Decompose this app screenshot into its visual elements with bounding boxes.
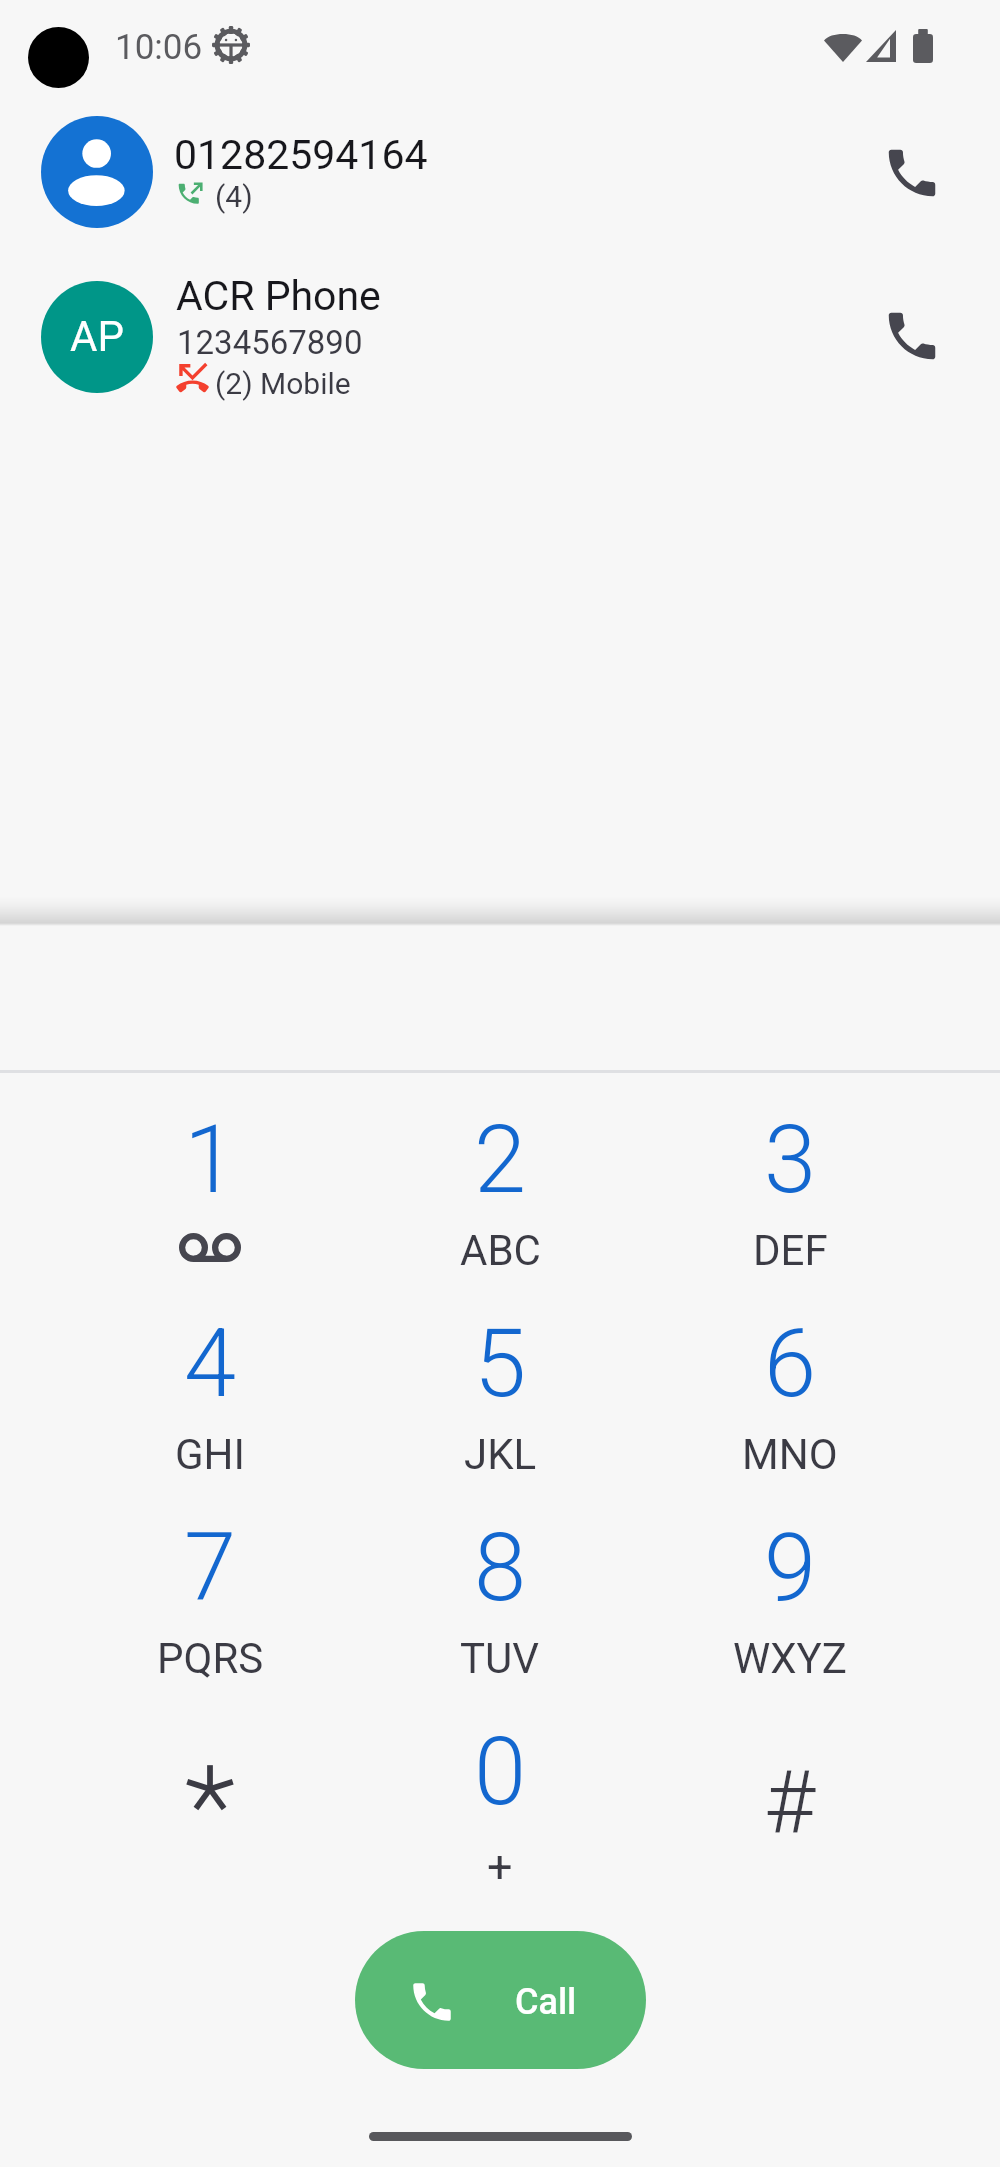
staticText: 5 xyxy=(474,1309,527,1419)
staticText: ACR Phone xyxy=(176,272,381,320)
staticText: MNO xyxy=(742,1430,838,1479)
staticText: PQRS xyxy=(157,1634,264,1683)
staticText: 8 xyxy=(474,1513,527,1623)
staticText: WXYZ xyxy=(733,1634,847,1683)
button[interactable]: Call ACR Phone xyxy=(866,290,958,382)
staticText: 2 xyxy=(474,1105,527,1215)
button[interactable]: # xyxy=(645,1699,935,1903)
button[interactable]: 7 xyxy=(65,1495,355,1699)
staticText: AP xyxy=(70,312,124,361)
staticText: 1 xyxy=(184,1105,237,1215)
staticText: 0 xyxy=(474,1717,527,1827)
staticText: # xyxy=(764,1750,816,1853)
staticText: 6 xyxy=(764,1309,817,1419)
staticText: ABC xyxy=(460,1226,541,1275)
staticText: + xyxy=(487,1840,513,1893)
button[interactable]: Call xyxy=(355,1931,646,2069)
staticText: GHI xyxy=(175,1430,245,1479)
staticText: 9 xyxy=(764,1513,817,1623)
staticText: TUV xyxy=(460,1634,540,1683)
button[interactable]: 5 xyxy=(355,1291,645,1495)
staticText: 4 xyxy=(184,1309,237,1419)
button[interactable]: 6 xyxy=(645,1291,935,1495)
staticText: Call xyxy=(515,1981,577,2023)
staticText: 3 xyxy=(764,1105,817,1215)
button[interactable]: 8 xyxy=(355,1495,645,1699)
staticText: JKL xyxy=(464,1430,537,1479)
button[interactable]: AP xyxy=(0,262,1000,424)
button[interactable]: 9 xyxy=(645,1495,935,1699)
button[interactable]: 01282594164 xyxy=(0,100,1000,246)
button[interactable]: 0 xyxy=(355,1699,645,1903)
button[interactable]: star xyxy=(65,1699,355,1903)
button[interactable]: Call 01282594164 xyxy=(866,127,958,219)
staticText: 1234567890 xyxy=(177,323,363,362)
button[interactable]: 1 xyxy=(65,1087,355,1291)
staticText: 7 xyxy=(184,1513,237,1623)
button[interactable]: 3 xyxy=(645,1087,935,1291)
staticText: DEF xyxy=(753,1226,828,1275)
staticText: 10:06 xyxy=(115,27,203,68)
staticText: (4) xyxy=(215,179,253,214)
button[interactable]: 2 xyxy=(355,1087,645,1291)
staticText: 01282594164 xyxy=(174,131,428,179)
button[interactable]: 4 xyxy=(65,1291,355,1495)
staticText: (2) Mobile xyxy=(215,366,351,401)
